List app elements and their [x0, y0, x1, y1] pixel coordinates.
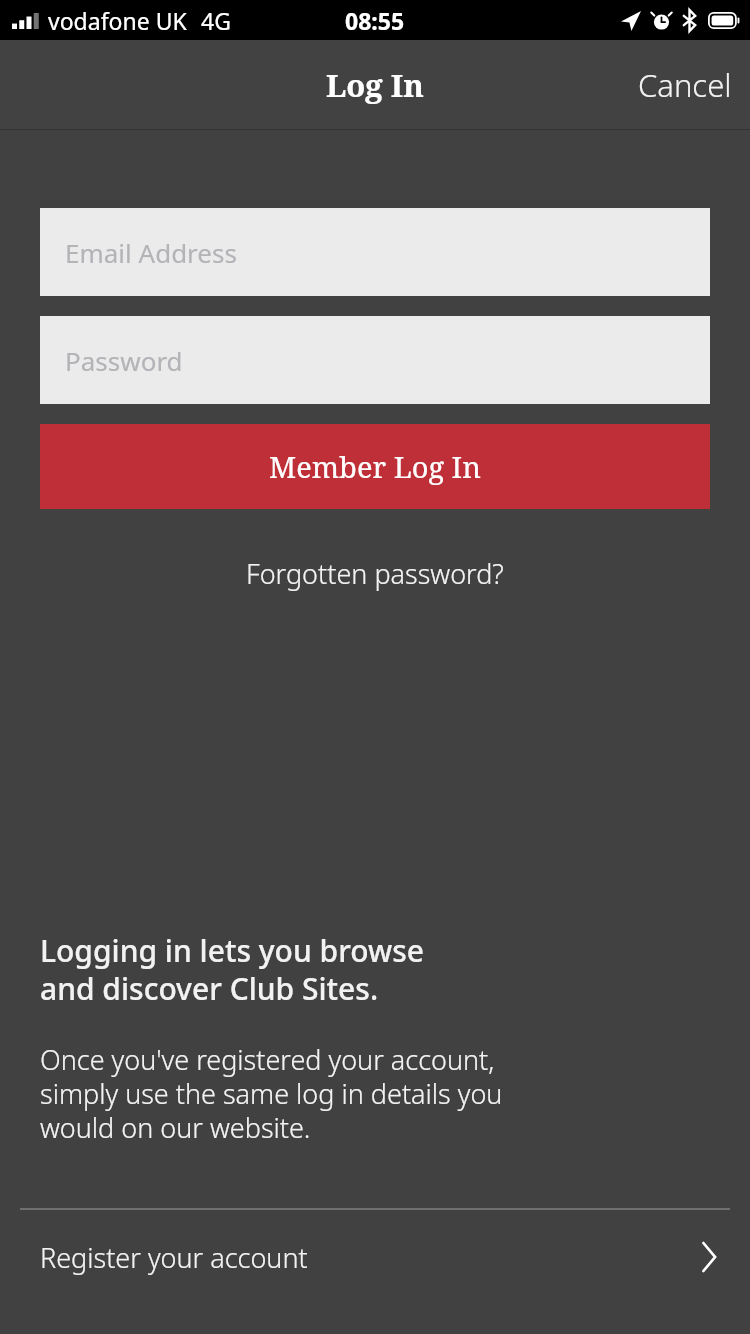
staticText: Member Log In: [269, 447, 481, 486]
button[interactable]: Register your account: [0, 1210, 750, 1304]
staticText: 08:55: [345, 5, 405, 36]
button[interactable]: Member Log In: [40, 424, 710, 509]
staticText: 4G: [201, 5, 231, 36]
button[interactable]: Email Address: [40, 208, 710, 296]
staticText: Forgotten password?: [246, 555, 504, 592]
staticText: Register your account: [40, 1239, 308, 1276]
staticText: Cancel: [638, 64, 732, 106]
staticText: Password: [65, 343, 183, 378]
staticText: Log In: [326, 64, 424, 106]
button[interactable]: Cancel: [620, 48, 750, 122]
staticText: Logging in lets you browse and discover …: [40, 930, 424, 1009]
button[interactable]: Password: [40, 316, 710, 404]
other: Register your account: [701, 1243, 717, 1271]
button[interactable]: Forgotten password?: [222, 547, 528, 600]
staticText: Once you've registered your account, sim…: [40, 1041, 503, 1146]
staticText: Email Address: [65, 235, 237, 270]
staticText: vodafone UK: [48, 5, 187, 36]
